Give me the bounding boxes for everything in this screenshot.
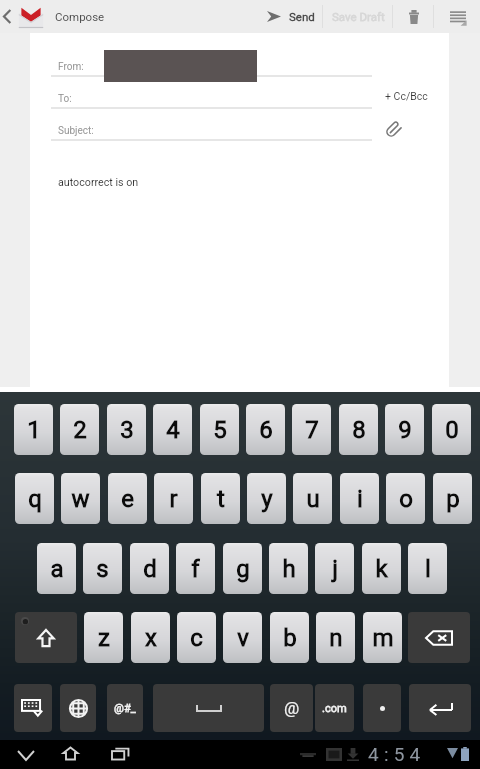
button[interactable]: At sign [270, 684, 313, 732]
button[interactable]: 0 [432, 404, 471, 455]
button[interactable]: Space [153, 684, 264, 732]
button[interactable]: o [386, 473, 425, 524]
button[interactable]: 9 [385, 404, 424, 455]
button[interactable]: 2 [60, 404, 99, 455]
button[interactable]: 8 [339, 404, 378, 455]
button[interactable]: a [37, 543, 76, 594]
button[interactable]: r [154, 473, 193, 524]
staticText: g [236, 555, 250, 583]
staticText: 9 [398, 416, 412, 444]
button[interactable]: h [269, 543, 308, 594]
staticText: To: [58, 93, 72, 105]
button[interactable]: + Cc/Bcc [381, 86, 432, 106]
staticText: .com [322, 702, 347, 715]
button[interactable]: Shift [15, 612, 77, 663]
staticText: c [190, 624, 203, 652]
staticText: t [217, 485, 225, 513]
staticText: l [425, 555, 431, 583]
button[interactable]: q [15, 473, 54, 524]
staticText: autocorrect is on [58, 176, 139, 189]
staticText: k [375, 555, 388, 583]
button[interactable]: Navigate up [0, 0, 46, 33]
button[interactable]: u [293, 473, 332, 524]
staticText: Compose [55, 10, 105, 23]
button[interactable]: b [270, 612, 309, 663]
button[interactable]: 7 [292, 404, 331, 455]
staticText: 5 [213, 416, 227, 444]
staticText: Save Draft [332, 10, 385, 23]
button[interactable]: 4 [153, 404, 192, 455]
button[interactable]: v [223, 612, 262, 663]
button[interactable]: c [177, 612, 216, 663]
button[interactable]: Change language [60, 684, 96, 732]
staticText: 3 [120, 416, 134, 444]
staticText: + Cc/Bcc [385, 90, 428, 102]
button[interactable]: Dot com [315, 684, 354, 732]
staticText: @ [284, 698, 300, 718]
button[interactable]: More options [435, 0, 480, 33]
button[interactable]: w [61, 473, 100, 524]
staticText: s [96, 555, 109, 583]
staticText: v [237, 624, 249, 652]
staticText: e [121, 485, 134, 513]
button[interactable]: y [247, 473, 286, 524]
button[interactable]: k [362, 543, 401, 594]
button[interactable]: Enter [409, 684, 471, 732]
button[interactable]: Backspace [408, 612, 470, 663]
staticText: 8 [352, 416, 366, 444]
staticText: 6 [259, 416, 273, 444]
button[interactable]: 5 [200, 404, 239, 455]
staticText: d [143, 555, 157, 583]
button[interactable]: t [201, 473, 240, 524]
button[interactable]: Recent apps [98, 740, 140, 769]
staticText: u [306, 485, 320, 513]
button[interactable]: Discard [394, 0, 433, 33]
staticText: From: [58, 61, 84, 73]
button[interactable]: d [130, 543, 169, 594]
staticText: w [71, 485, 90, 513]
button[interactable]: Home [50, 740, 92, 769]
staticText: i [357, 485, 363, 513]
staticText: Subject: [58, 125, 94, 137]
button[interactable]: Symbols [107, 684, 143, 732]
button[interactable]: Send [262, 0, 322, 33]
button[interactable]: Hide keyboard [14, 684, 52, 732]
staticText: Send [289, 10, 315, 23]
button[interactable]: m [363, 612, 402, 663]
button[interactable]: z [84, 612, 123, 663]
staticText: q [28, 485, 42, 513]
button[interactable]: f [176, 543, 215, 594]
staticText: z [98, 624, 110, 652]
button[interactable]: g [223, 543, 262, 594]
staticText: n [329, 624, 343, 652]
button[interactable]: j [315, 543, 354, 594]
staticText: x [145, 624, 157, 652]
staticText: 0 [445, 416, 459, 444]
staticText: j [332, 555, 338, 583]
button[interactable]: 3 [107, 404, 146, 455]
button[interactable]: l [408, 543, 447, 594]
button[interactable]: Save Draft [324, 0, 391, 33]
button[interactable]: p [433, 473, 472, 524]
button[interactable]: e [108, 473, 147, 524]
button[interactable]: n [316, 612, 355, 663]
button[interactable]: 6 [246, 404, 285, 455]
button[interactable]: Attach file [381, 117, 406, 142]
staticText: 4 [166, 416, 180, 444]
button[interactable]: 1 [14, 404, 53, 455]
staticText: @#_ [114, 702, 136, 715]
staticText: y [261, 485, 273, 513]
button[interactable]: Period [363, 684, 401, 732]
button[interactable]: i [340, 473, 379, 524]
staticText: m [372, 624, 394, 652]
staticText: 2 [73, 416, 87, 444]
button[interactable]: Back [5, 740, 47, 769]
staticText: a [50, 555, 64, 583]
button[interactable]: s [83, 543, 122, 594]
staticText: 4:54 [368, 743, 426, 765]
staticText: h [282, 555, 296, 583]
button[interactable]: x [131, 612, 170, 663]
staticText: b [283, 624, 297, 652]
staticText: 7 [305, 416, 319, 444]
